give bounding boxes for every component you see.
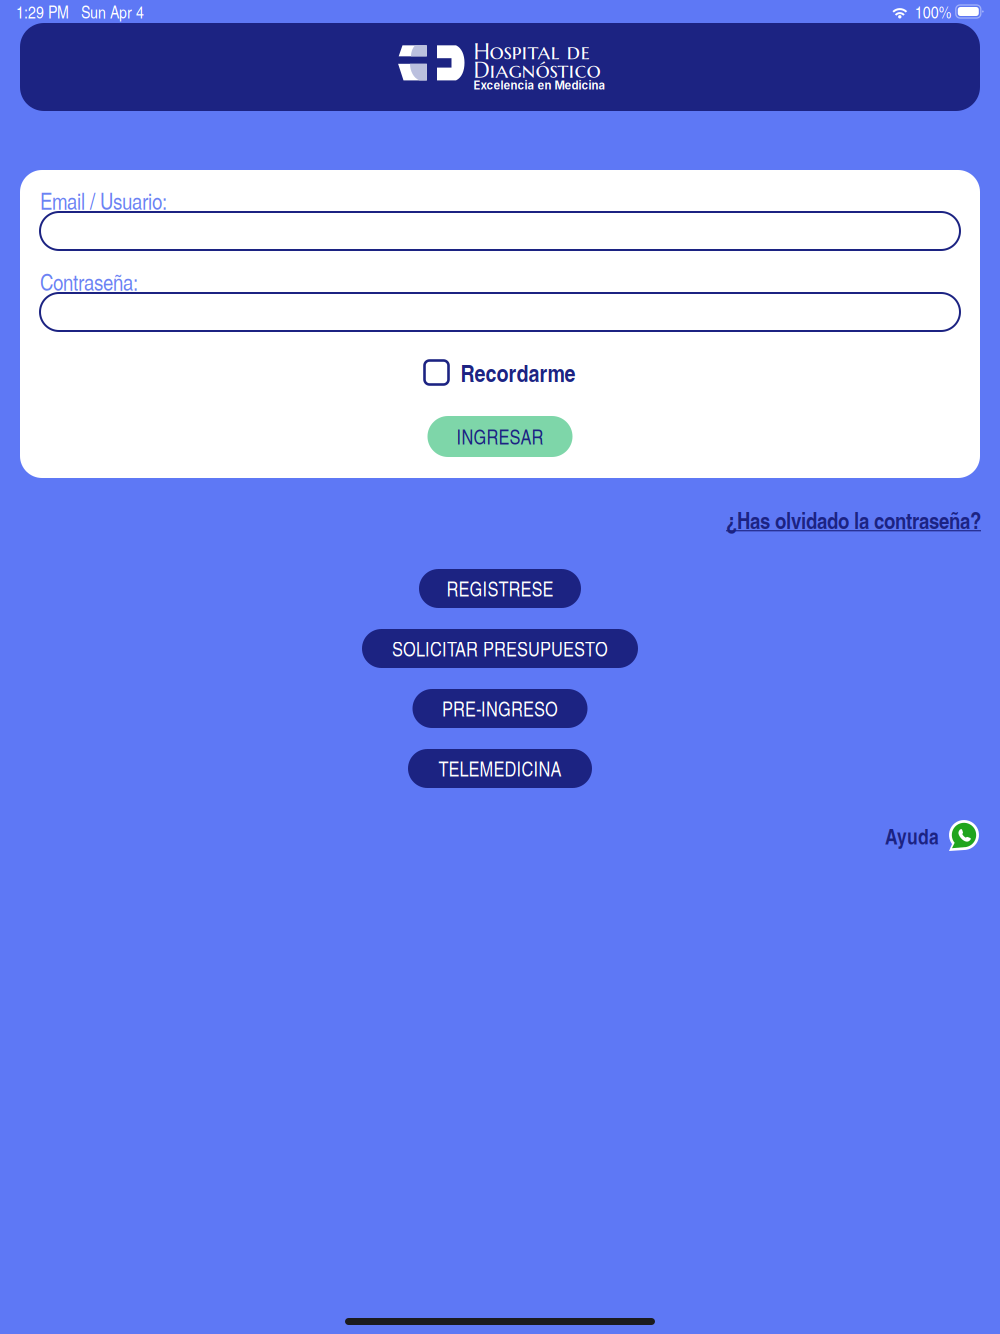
button[interactable]: PRE-INGRESO [412,689,587,728]
staticText: REGISTRESE [446,575,553,602]
staticText: Hospital de [473,37,589,66]
button[interactable]: INGRESAR [427,416,572,457]
staticText: SOLICITAR PRESUPUESTO [392,635,608,662]
staticText: 1:29 PM [16,0,69,23]
staticText: Excelencia en Medicina [473,79,605,92]
button[interactable]: Ayuda [885,820,980,852]
button[interactable]: TELEMEDICINA [408,749,592,788]
button[interactable]: REGISTRESE [419,569,581,608]
staticText: Email / Usuario: [40,185,167,216]
staticText: ¿Has olvidado la contraseña? [726,504,981,536]
staticText: 100% [915,0,952,23]
staticText: Ayuda [885,821,939,851]
staticText: Contraseña: [40,266,138,297]
staticText: INGRESAR [456,423,543,450]
staticText: PRE-INGRESO [442,695,558,722]
button[interactable]: ¿Has olvidado la contraseña? [726,504,981,536]
staticText: Recordarme [460,356,575,389]
button[interactable]: SOLICITAR PRESUPUESTO [362,629,638,668]
button[interactable]: Recordarme [424,360,575,385]
staticText: Sun Apr 4 [81,0,144,23]
staticText: Diagnóstico [473,56,600,84]
staticText: TELEMEDICINA [438,755,561,782]
